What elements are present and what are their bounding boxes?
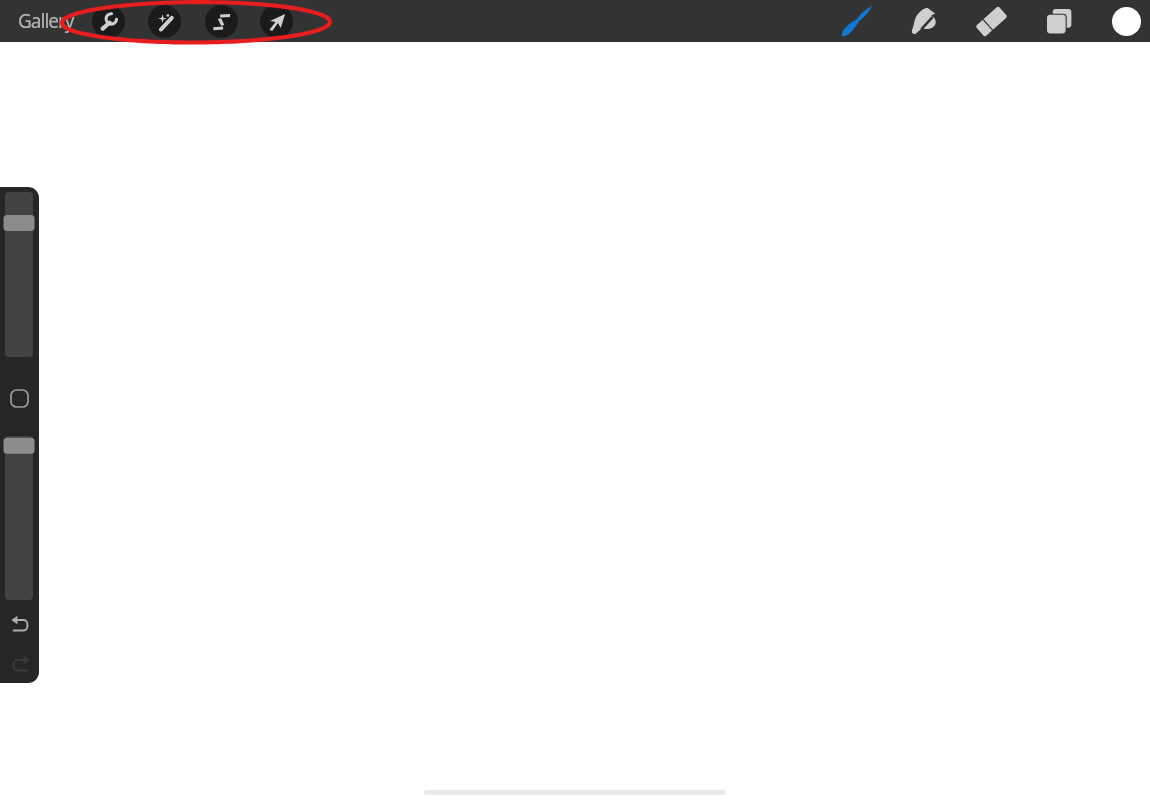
button[interactable]: Gallery <box>14 7 76 35</box>
staticText: Gallery <box>18 8 74 34</box>
button[interactable]: Colour <box>1107 2 1145 40</box>
button[interactable] <box>5 436 33 600</box>
button[interactable]: Undo <box>5 607 35 637</box>
button[interactable]: Selection <box>205 5 238 38</box>
button[interactable]: Paint <box>838 2 876 40</box>
button[interactable]: Adjustments <box>148 5 181 38</box>
button[interactable]: Smudge <box>905 2 943 40</box>
button[interactable]: Erase <box>972 2 1010 40</box>
button[interactable]: Redo <box>5 647 35 677</box>
button[interactable] <box>5 192 33 357</box>
button[interactable]: Transform <box>260 5 293 38</box>
button[interactable]: Layers <box>1040 2 1078 40</box>
button[interactable]: Actions <box>92 5 125 38</box>
button[interactable]: Modify <box>4 383 34 413</box>
